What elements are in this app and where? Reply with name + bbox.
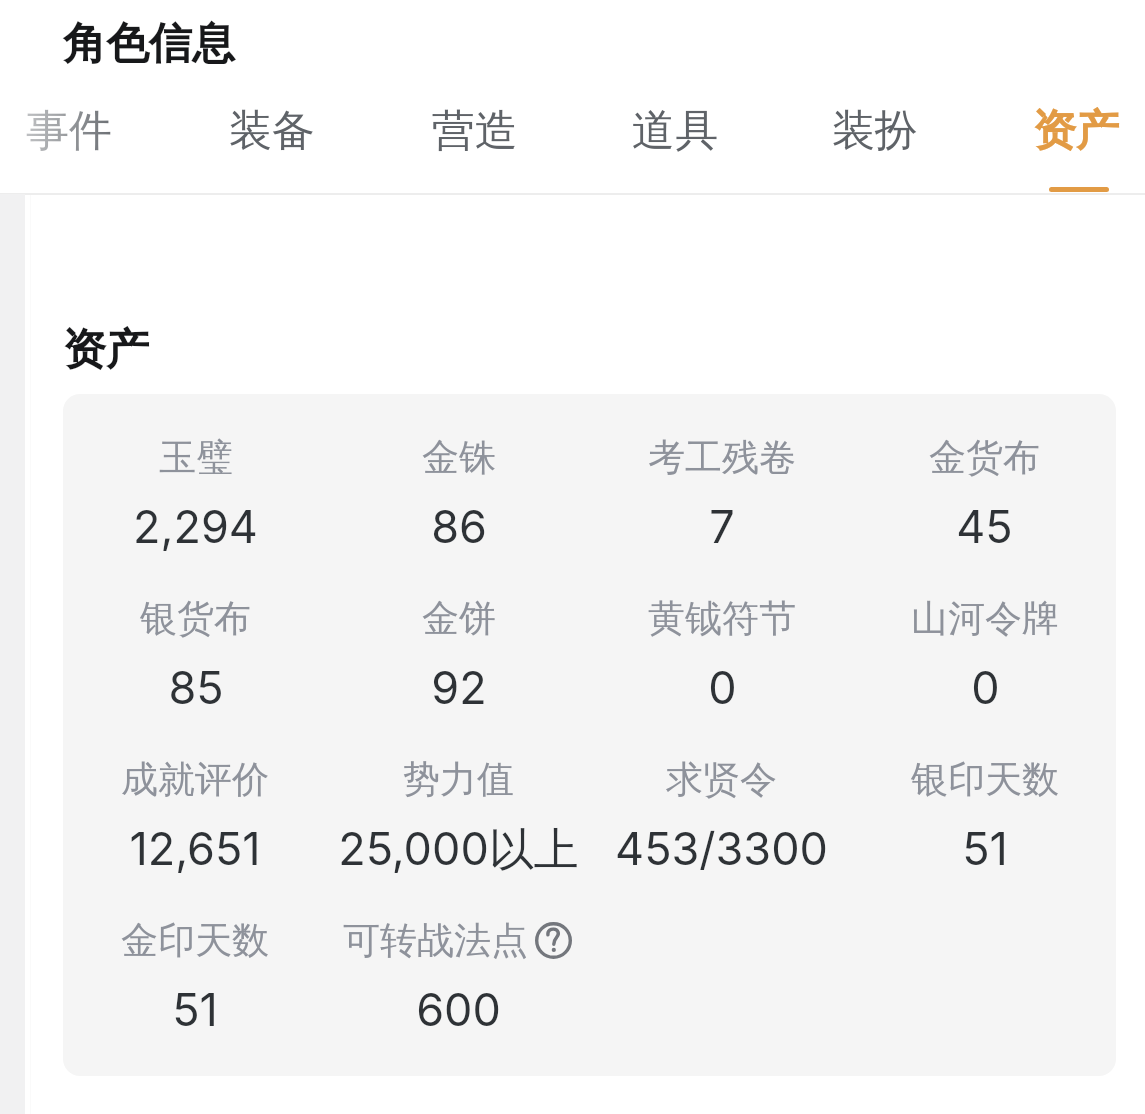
staticText: 求贤令 [666,756,777,803]
button[interactable]: 事件 [0,104,161,204]
staticText: 玉璧 [159,434,233,481]
button[interactable]: 可转战法点说明 [533,920,574,961]
staticText: 山河令牌 [911,595,1059,642]
staticText: 51 [962,821,1008,875]
staticText: 12,651 [129,821,261,875]
staticText: 装备 [229,104,315,158]
staticText: 角色信息 [63,17,235,71]
staticText: 92 [431,660,487,714]
staticText: 25,000以上 [338,821,579,878]
staticText: 0 [708,660,737,714]
staticText: 资产 [1033,104,1119,158]
staticText: 考工残卷 [648,434,796,481]
staticText: 金货布 [929,434,1040,481]
staticText: 金印天数 [121,917,269,964]
staticText: 营造 [432,104,518,158]
staticText: 51 [172,982,218,1036]
staticText: 453/3300 [615,821,828,875]
button[interactable]: 营造 [383,104,567,204]
staticText: 事件 [26,104,112,158]
staticText: 银印天数 [911,756,1059,803]
staticText: 86 [431,499,487,553]
staticText: 银货布 [140,595,251,642]
button[interactable]: 装扮 [783,104,967,204]
staticText: 600 [416,982,501,1036]
button[interactable]: 装备 [180,104,364,204]
staticText: 道具 [632,104,718,158]
staticText: 85 [168,660,224,714]
staticText: 金饼 [422,595,496,642]
staticText: 黄钺符节 [648,595,796,642]
staticText: 0 [971,660,1000,714]
staticText: 成就评价 [121,756,269,803]
staticText: 45 [956,499,1013,553]
staticText: 可转战法点 [343,917,528,964]
staticText: 装扮 [832,104,918,158]
button[interactable]: 资产 [984,104,1145,204]
staticText: 势力值 [403,756,514,803]
staticText: 7 [709,499,735,553]
staticText: 2,294 [133,499,258,553]
staticText: 金铢 [422,434,496,481]
button[interactable]: 道具 [583,104,767,204]
staticText: 资产 [63,323,149,377]
